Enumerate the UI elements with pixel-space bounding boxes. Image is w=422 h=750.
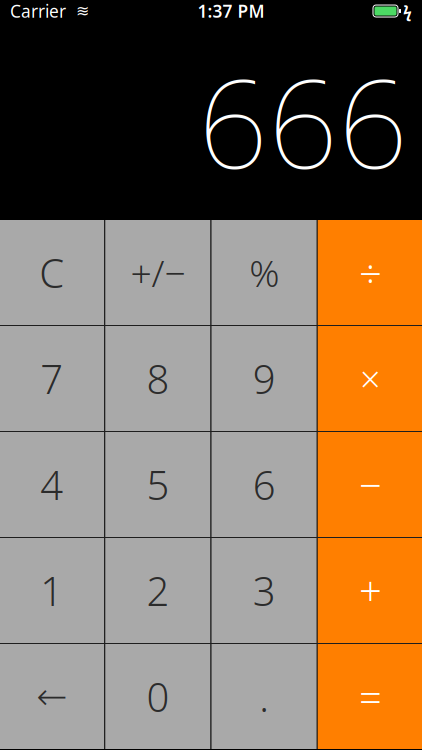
- staticText: .: [259, 670, 269, 723]
- button[interactable]: 8: [105, 326, 210, 431]
- staticText: +: [359, 564, 382, 617]
- staticText: 2: [146, 564, 169, 617]
- staticText: ÷: [359, 246, 382, 299]
- button[interactable]: 9: [211, 326, 317, 431]
- button[interactable]: Minus: [318, 432, 422, 537]
- staticText: 5: [146, 458, 169, 511]
- button[interactable]: 0: [105, 644, 210, 749]
- staticText: 8: [146, 352, 169, 405]
- staticText: 666: [198, 40, 408, 202]
- button[interactable]: 1: [0, 538, 104, 643]
- staticText: ϟ: [403, 0, 412, 22]
- staticText: ≋: [66, 2, 89, 20]
- button[interactable]: 7: [0, 326, 104, 431]
- staticText: 0: [146, 670, 169, 723]
- button[interactable]: +/−: [105, 220, 210, 325]
- staticText: 3: [253, 564, 276, 617]
- staticText: %: [249, 248, 279, 297]
- staticText: 9: [253, 352, 276, 405]
- staticText: ←: [36, 675, 67, 718]
- staticText: Carrier: [10, 0, 66, 22]
- button[interactable]: Plus: [318, 538, 422, 643]
- staticText: +/−: [130, 248, 185, 297]
- staticText: 1: [40, 564, 63, 617]
- staticText: C: [39, 246, 64, 299]
- button[interactable]: 6: [211, 432, 317, 537]
- button[interactable]: 5: [105, 432, 210, 537]
- button[interactable]: %: [211, 220, 317, 325]
- button[interactable]: .: [211, 644, 317, 749]
- button[interactable]: 3: [211, 538, 317, 643]
- staticText: 4: [40, 458, 63, 511]
- button[interactable]: Backspace: [0, 644, 104, 749]
- staticText: 7: [40, 352, 63, 405]
- button[interactable]: Multiply: [318, 326, 422, 431]
- button[interactable]: 2: [105, 538, 210, 643]
- button[interactable]: Equals: [318, 644, 422, 749]
- staticText: ×: [360, 355, 381, 402]
- button[interactable]: Clear: [0, 220, 104, 325]
- staticText: 6: [253, 458, 276, 511]
- button[interactable]: Divide: [318, 220, 422, 325]
- staticText: 1:37 PM: [197, 0, 264, 22]
- button[interactable]: 4: [0, 432, 104, 537]
- staticText: =: [359, 670, 382, 723]
- staticText: −: [359, 458, 382, 511]
